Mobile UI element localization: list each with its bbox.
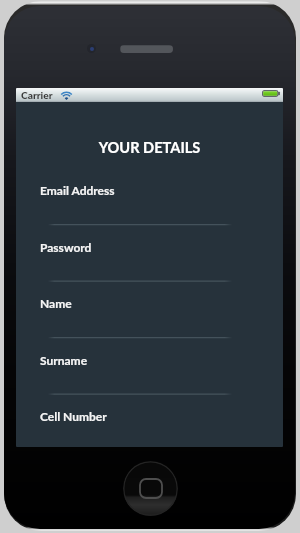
staticText: Email Address xyxy=(40,183,115,197)
button[interactable] xyxy=(16,145,283,202)
staticText: Cell Number xyxy=(40,409,107,423)
button[interactable] xyxy=(16,259,283,316)
staticText: Carrier xyxy=(21,89,53,101)
staticText: Password xyxy=(40,240,92,254)
staticText: Surname xyxy=(40,353,88,367)
button[interactable] xyxy=(16,88,283,145)
button[interactable]: Home xyxy=(123,461,178,516)
staticText: YOUR DETAILS xyxy=(16,139,283,157)
button[interactable] xyxy=(16,202,283,259)
button[interactable] xyxy=(16,316,283,373)
staticText: Name xyxy=(40,296,72,310)
